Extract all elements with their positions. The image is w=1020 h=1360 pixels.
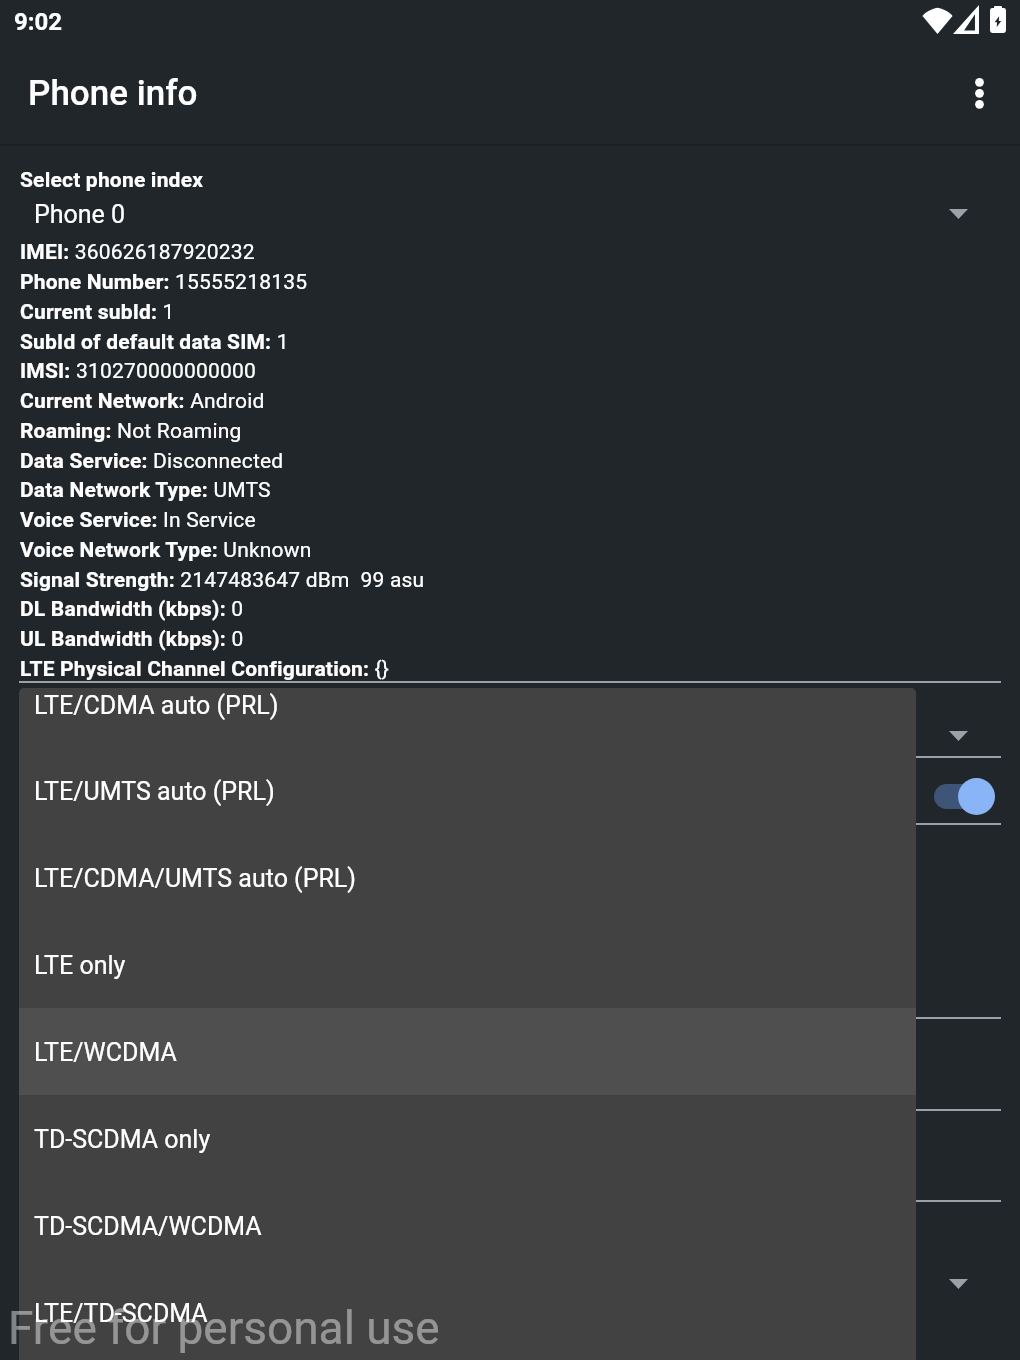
button[interactable]: LTE/CDMA auto (PRL) <box>19 688 916 749</box>
staticText: Free for personal use <box>8 1301 440 1355</box>
staticText: Phone Number: 15555218135 <box>20 270 308 295</box>
staticText: Signal Strength: 2147483647 dBm 99 asu <box>20 568 425 593</box>
button[interactable]: Toggle setting <box>930 775 1002 819</box>
staticText: UL Bandwidth (kbps): 0 <box>20 627 244 652</box>
staticText: TD-SCDMA/WCDMA <box>34 1212 262 1241</box>
staticText: Data Network Type: UMTS <box>20 478 271 503</box>
staticText: Current Network: Android <box>20 389 265 414</box>
staticText: Current subId: 1 <box>20 300 175 325</box>
staticText: LTE/TD-SCDMA <box>34 1299 208 1328</box>
staticText: IMEI: 360626187920232 <box>20 240 255 265</box>
button[interactable]: TD-SCDMA/WCDMA <box>19 1183 916 1270</box>
button[interactable]: TD-SCDMA only <box>19 1096 916 1183</box>
staticText: LTE only <box>34 951 126 980</box>
button[interactable]: LTE/CDMA/UMTS auto (PRL) <box>19 835 916 922</box>
staticText: 9:02 <box>14 8 63 36</box>
button[interactable]: LTE only <box>19 922 916 1009</box>
staticText: DL Bandwidth (kbps): 0 <box>20 597 244 622</box>
staticText: IMSI: 310270000000000 <box>20 359 256 384</box>
staticText: Voice Network Type: Unknown <box>20 538 312 563</box>
staticText: Phone info <box>28 73 198 114</box>
button[interactable]: LTE/TD-SCDMA <box>19 1270 916 1357</box>
button[interactable]: Preferred network type <box>700 695 1000 755</box>
staticText: LTE/UMTS auto (PRL) <box>34 777 275 806</box>
button[interactable]: LTE/WCDMA <box>19 1009 916 1096</box>
staticText: LTE/CDMA auto (PRL) <box>34 691 279 720</box>
staticText: Data Service: Disconnected <box>20 449 284 474</box>
staticText: LTE Physical Channel Configuration: {} <box>20 657 390 682</box>
button[interactable]: Phone 0 <box>0 198 1020 234</box>
button[interactable]: Select option <box>700 1240 1000 1300</box>
staticText: Voice Service: In Service <box>20 508 256 533</box>
staticText: TD-SCDMA only <box>34 1125 211 1154</box>
staticText: Roaming: Not Roaming <box>20 419 242 444</box>
staticText: LTE/WCDMA <box>34 1038 177 1067</box>
staticText: Select phone index <box>20 168 204 193</box>
staticText: SubId of default data SIM: 1 <box>20 330 289 355</box>
button[interactable]: LTE/UMTS auto (PRL) <box>19 748 916 835</box>
staticText: Phone 0 <box>34 200 126 229</box>
button[interactable]: More options <box>954 63 1006 115</box>
staticText: LTE/CDMA/UMTS auto (PRL) <box>34 864 357 893</box>
